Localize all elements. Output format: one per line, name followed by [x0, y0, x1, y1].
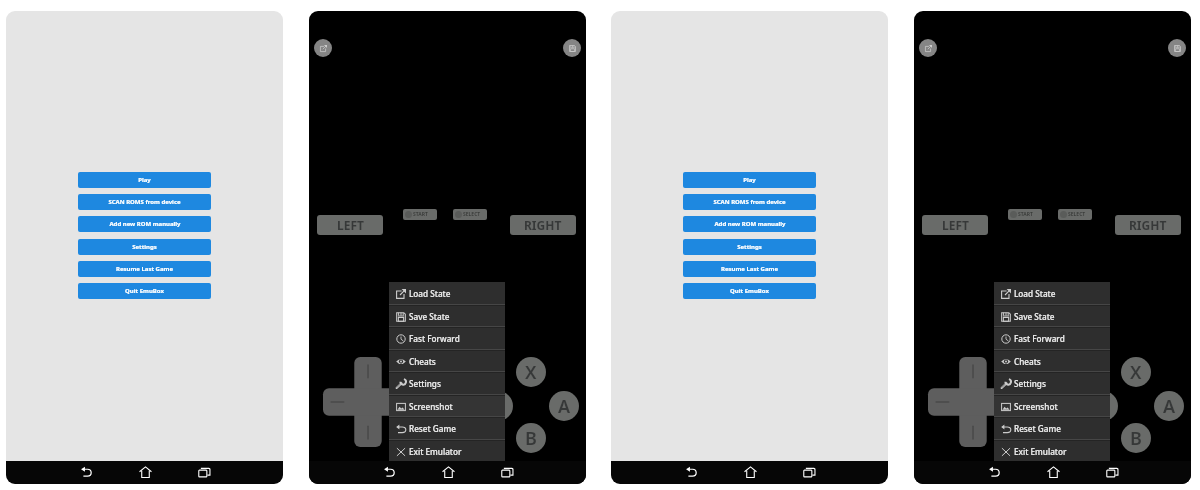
button[interactable]: Recents: [1095, 461, 1130, 484]
button[interactable]: RIGHT: [1115, 215, 1181, 235]
button[interactable]: SCAN ROMS from device: [683, 194, 816, 210]
button[interactable]: Settings: [78, 239, 211, 255]
button[interactable]: Exit Emulator: [389, 440, 505, 463]
button[interactable]: Save state: [1168, 39, 1186, 57]
staticText: SELECT: [1068, 211, 1086, 218]
button[interactable]: Reset Game: [389, 417, 505, 440]
button[interactable]: Load state: [919, 39, 937, 57]
staticText: Add new ROM manually: [109, 220, 181, 228]
button[interactable]: START: [1008, 209, 1042, 220]
button[interactable]: Play: [78, 172, 211, 188]
staticText: A: [1163, 394, 1176, 419]
staticText: Exit Emulator: [409, 446, 462, 457]
button[interactable]: X: [1121, 357, 1151, 387]
staticText: Quit EmuBox: [730, 287, 769, 295]
button[interactable]: Resume Last Game: [683, 261, 816, 277]
button[interactable]: A: [1154, 391, 1184, 421]
button[interactable]: RIGHT: [510, 215, 576, 235]
staticText: SCAN ROMS from device: [108, 198, 181, 206]
staticText: SCAN ROMS from device: [713, 198, 786, 206]
staticText: Settings: [737, 243, 762, 251]
button[interactable]: Home: [128, 461, 163, 484]
button[interactable]: START: [403, 209, 437, 220]
staticText: Add new ROM manually: [714, 220, 786, 228]
staticText: SELECT: [463, 211, 481, 218]
button[interactable]: Quit EmuBox: [683, 283, 816, 299]
staticText: Exit Emulator: [1014, 446, 1067, 457]
staticText: A: [558, 394, 571, 419]
button[interactable]: Screenshot: [994, 395, 1110, 418]
staticText: Reset Game: [1014, 423, 1061, 434]
button[interactable]: Y button: [1088, 391, 1118, 421]
button[interactable]: Fast Forward: [389, 327, 505, 350]
button[interactable]: Back: [977, 461, 1012, 484]
button[interactable]: Fast Forward: [994, 327, 1110, 350]
button[interactable]: SELECT: [1058, 209, 1092, 220]
staticText: Play: [138, 176, 151, 184]
staticText: Load State: [1014, 288, 1056, 299]
staticText: Save State: [1014, 311, 1055, 322]
button[interactable]: Recents: [490, 461, 525, 484]
staticText: Quit EmuBox: [125, 287, 164, 295]
staticText: START: [1018, 211, 1033, 218]
staticText: Resume Last Game: [721, 265, 778, 273]
button[interactable]: Play: [683, 172, 816, 188]
button[interactable]: Home: [733, 461, 768, 484]
button[interactable]: Add new ROM manually: [683, 216, 816, 232]
button[interactable]: Home: [431, 461, 466, 484]
staticText: Load State: [409, 288, 451, 299]
button[interactable]: Home: [1036, 461, 1071, 484]
button[interactable]: Reset Game: [994, 417, 1110, 440]
staticText: Fast Forward: [409, 333, 460, 344]
button[interactable]: Save State: [389, 305, 505, 328]
button[interactable]: Load State: [389, 282, 505, 305]
button[interactable]: Settings: [994, 372, 1110, 395]
button[interactable]: D-pad: [323, 357, 413, 447]
button[interactable]: Settings: [389, 372, 505, 395]
staticText: Cheats: [1014, 356, 1041, 367]
staticText: Save State: [409, 311, 450, 322]
button[interactable]: Save state: [563, 39, 581, 57]
button[interactable]: X: [516, 357, 546, 387]
button[interactable]: Back: [69, 461, 104, 484]
button[interactable]: Settings: [683, 239, 816, 255]
staticText: LEFT: [337, 217, 364, 233]
button[interactable]: LEFT: [317, 215, 383, 235]
button[interactable]: Recents: [187, 461, 222, 484]
button[interactable]: Y button: [483, 391, 513, 421]
button[interactable]: Add new ROM manually: [78, 216, 211, 232]
staticText: LEFT: [942, 217, 969, 233]
staticText: Screenshot: [409, 401, 453, 412]
button[interactable]: B: [516, 423, 546, 453]
staticText: Settings: [409, 378, 441, 389]
staticText: B: [525, 426, 537, 451]
button[interactable]: Save State: [994, 305, 1110, 328]
staticText: B: [1130, 426, 1142, 451]
staticText: Settings: [132, 243, 157, 251]
staticText: START: [413, 211, 428, 218]
button[interactable]: Screenshot: [389, 395, 505, 418]
button[interactable]: B: [1121, 423, 1151, 453]
button[interactable]: Resume Last Game: [78, 261, 211, 277]
button[interactable]: Load State: [994, 282, 1110, 305]
button[interactable]: Quit EmuBox: [78, 283, 211, 299]
button[interactable]: Load state: [314, 39, 332, 57]
button[interactable]: Recents: [792, 461, 827, 484]
staticText: Cheats: [409, 356, 436, 367]
button[interactable]: Cheats: [389, 350, 505, 373]
button[interactable]: SCAN ROMS from device: [78, 194, 211, 210]
staticText: Reset Game: [409, 423, 456, 434]
button[interactable]: Exit Emulator: [994, 440, 1110, 463]
button[interactable]: Back: [372, 461, 407, 484]
staticText: X: [1130, 360, 1142, 385]
button[interactable]: D-pad: [928, 357, 1018, 447]
staticText: RIGHT: [1129, 217, 1167, 233]
button[interactable]: SELECT: [453, 209, 487, 220]
staticText: Settings: [1014, 378, 1046, 389]
button[interactable]: LEFT: [922, 215, 988, 235]
staticText: Screenshot: [1014, 401, 1058, 412]
button[interactable]: Cheats: [994, 350, 1110, 373]
button[interactable]: Back: [674, 461, 709, 484]
staticText: RIGHT: [524, 217, 562, 233]
button[interactable]: A: [549, 391, 579, 421]
